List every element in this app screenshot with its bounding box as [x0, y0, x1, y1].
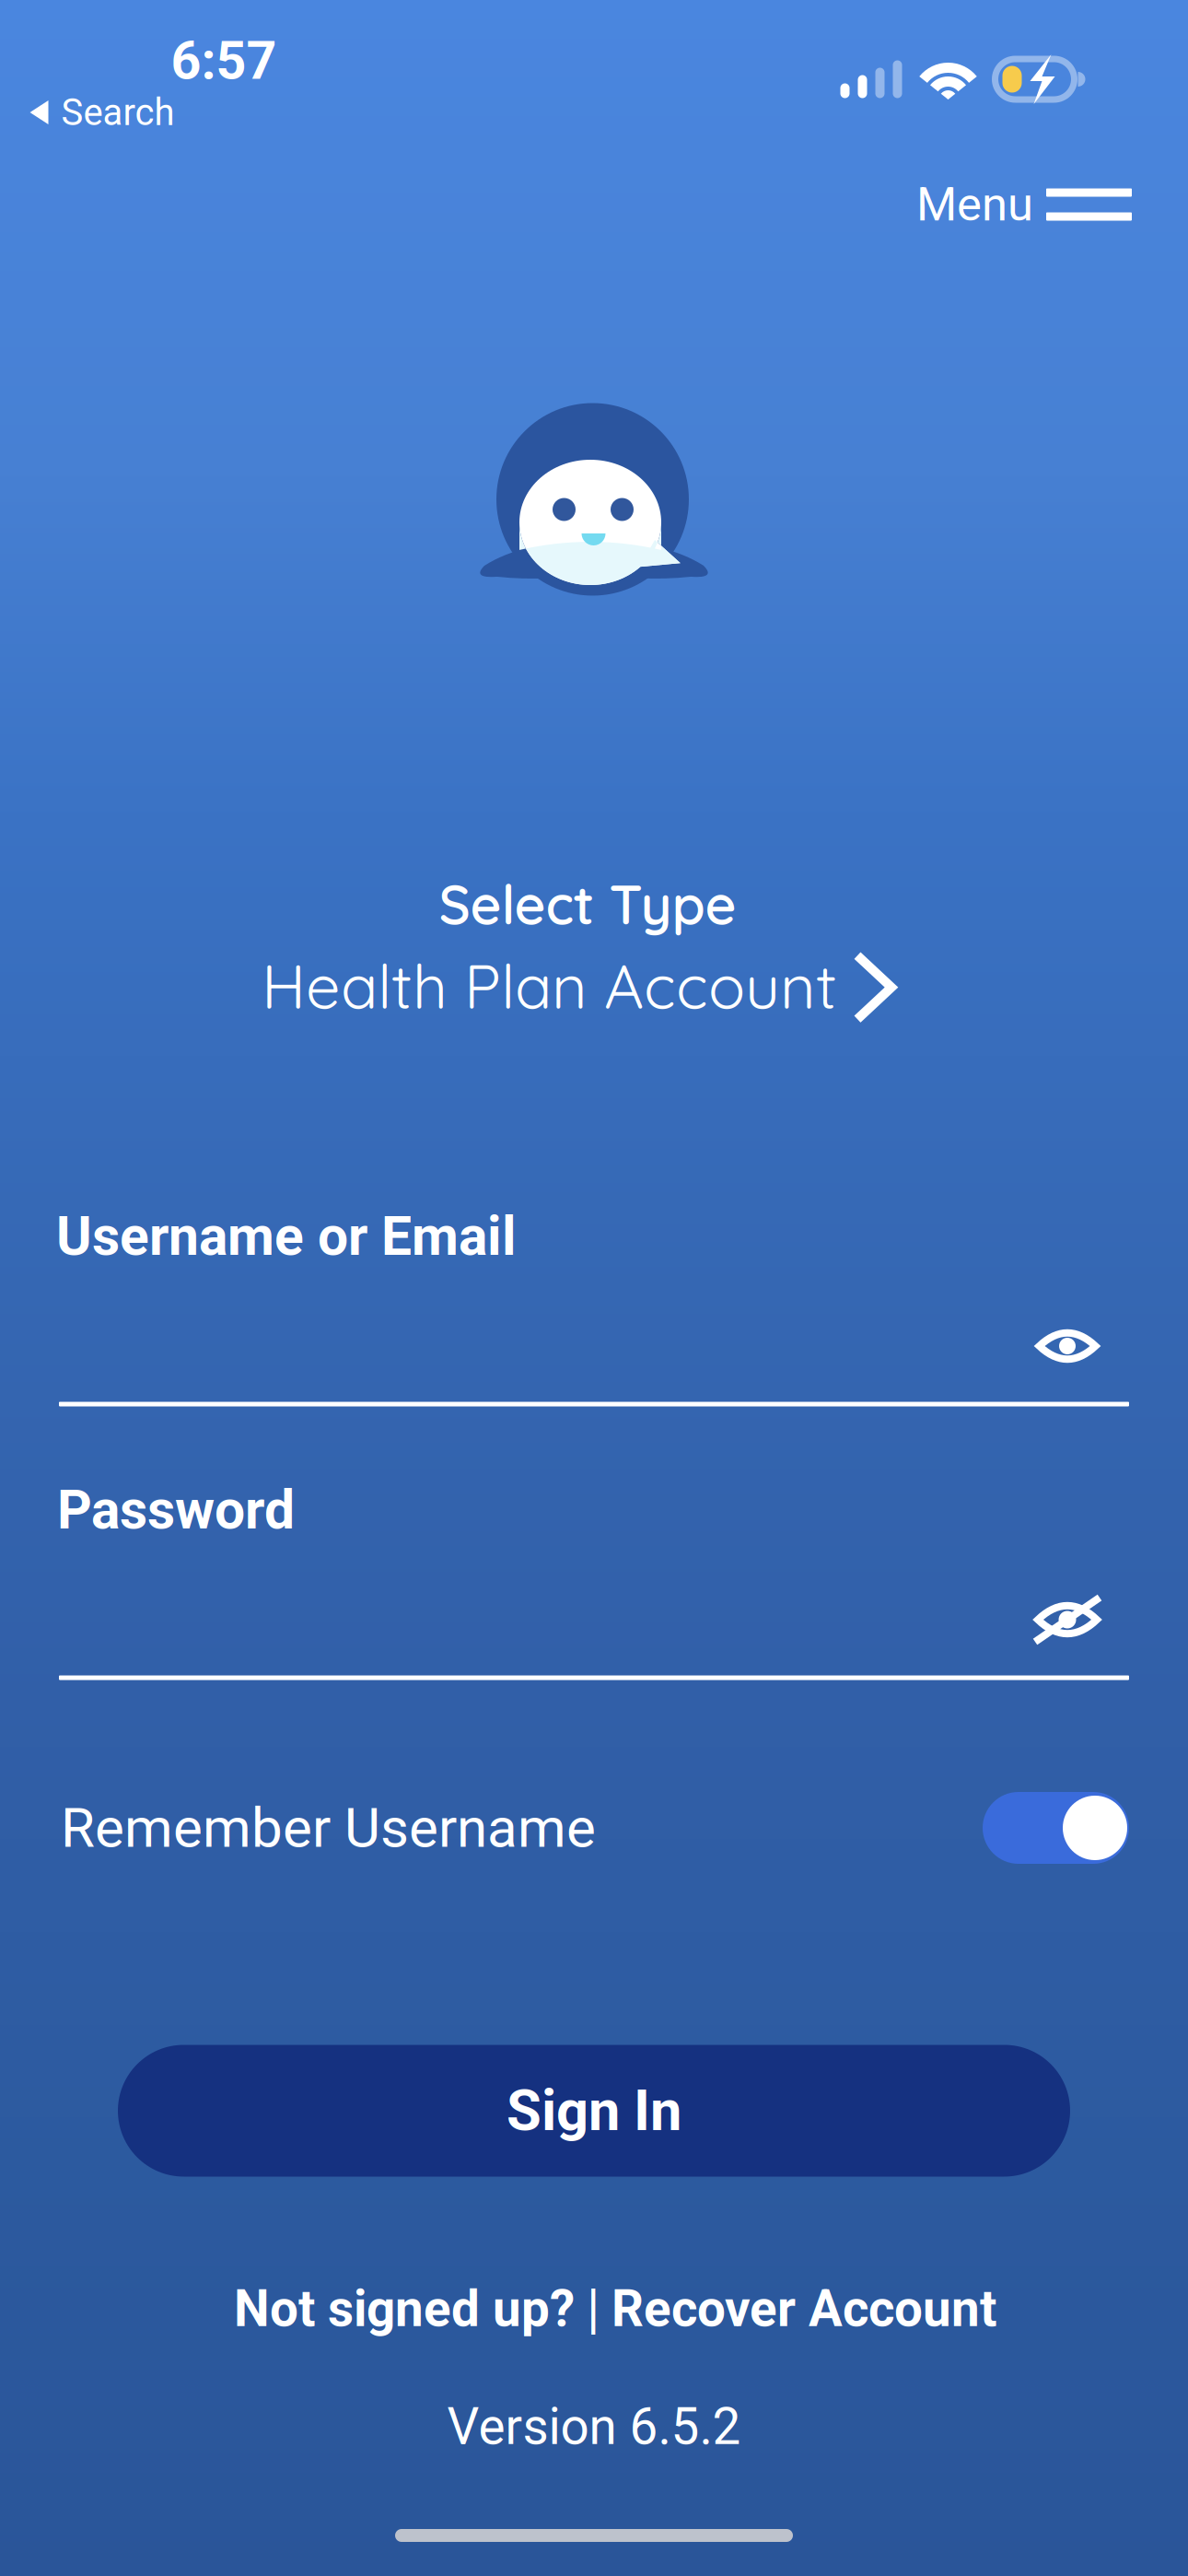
button[interactable]: Recover Account	[611, 2272, 996, 2346]
staticText: Select Type	[439, 870, 736, 938]
staticText: Remember Username	[61, 1795, 596, 1860]
staticText: Not signed up?	[234, 2279, 575, 2338]
button[interactable]: Menu	[898, 153, 1150, 256]
button[interactable]: Show username	[1026, 1317, 1108, 1376]
staticText: Menu	[916, 177, 1033, 232]
staticText: |	[587, 2277, 600, 2341]
staticText: Password	[57, 1478, 295, 1542]
button[interactable]: Not signed up?	[234, 2272, 575, 2346]
staticText: Health Plan Account	[262, 947, 837, 1024]
staticText: 6:57	[171, 30, 277, 92]
staticText: Recover Account	[611, 2279, 996, 2338]
button[interactable]: Sign In	[118, 2045, 1070, 2177]
staticText: Sign In	[507, 2078, 681, 2144]
button[interactable]: Hide password	[1023, 1587, 1112, 1653]
staticText: Version 6.5.2	[447, 2397, 741, 2456]
staticText: Username or Email	[56, 1205, 517, 1268]
button[interactable]: Select Type	[162, 861, 991, 1033]
staticText: Search	[61, 91, 175, 134]
button[interactable]: Remember Username	[61, 1777, 1129, 1879]
